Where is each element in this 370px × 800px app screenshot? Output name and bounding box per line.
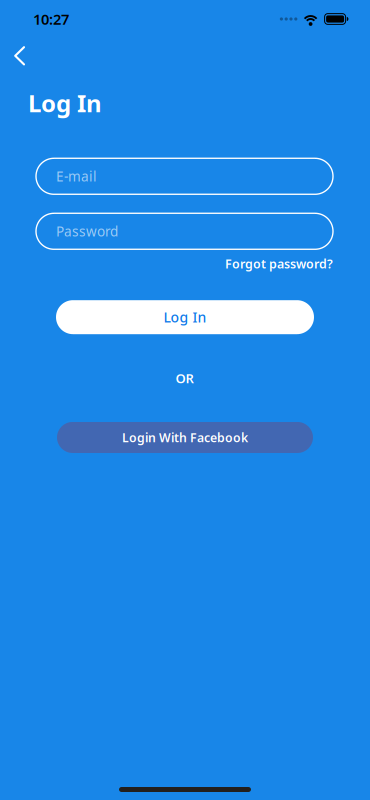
- button[interactable]: Back: [0, 38, 45, 77]
- staticText: Password: [56, 222, 118, 240]
- button[interactable]: Log In: [56, 300, 314, 334]
- staticText: 10:27: [33, 9, 69, 29]
- staticText: Login With Facebook: [122, 429, 248, 446]
- staticText: Log In: [28, 87, 102, 119]
- staticText: OR: [175, 369, 193, 387]
- staticText: E-mail: [56, 167, 97, 185]
- button[interactable]: Login With Facebook: [57, 422, 313, 453]
- staticText: Forgot password?: [225, 255, 333, 272]
- staticText: Log In: [163, 308, 206, 327]
- button[interactable]: Forgot password?: [225, 249, 333, 274]
